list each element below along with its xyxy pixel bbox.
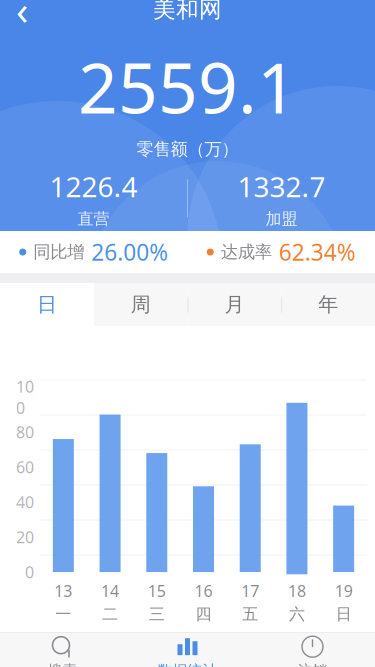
button[interactable]: 搜索	[0, 633, 125, 667]
staticText: 四	[195, 604, 211, 624]
staticText: 年	[318, 292, 338, 317]
staticText: 月	[224, 292, 244, 317]
button[interactable]: 月	[187, 283, 281, 326]
staticText: 14	[101, 580, 119, 601]
staticText: 1332.7	[237, 168, 325, 205]
staticText: 五	[242, 604, 258, 624]
staticText: 19	[335, 580, 353, 601]
staticText: 1226.4	[49, 168, 137, 205]
staticText: 零售额（万）	[136, 138, 238, 160]
staticText: 60	[16, 456, 34, 478]
staticText: 18	[288, 580, 306, 601]
staticText: 20	[16, 526, 34, 548]
button[interactable]: 数据统计	[125, 633, 250, 667]
staticText: 100	[16, 376, 34, 418]
button[interactable]: 日	[0, 283, 94, 326]
staticText: 62.34%	[279, 237, 356, 267]
staticText: 二	[102, 604, 118, 624]
staticText: 美和网	[153, 0, 222, 23]
staticText: 0	[25, 561, 34, 583]
staticText: 80	[16, 421, 34, 443]
button[interactable]: 周	[94, 283, 188, 326]
staticText: 三	[149, 604, 165, 624]
staticText: 直营	[77, 209, 109, 229]
staticText: 周	[131, 292, 151, 317]
staticText: 40	[16, 491, 34, 513]
staticText: 15	[148, 580, 166, 601]
staticText: 注销	[297, 662, 327, 667]
staticText: 加盟	[265, 209, 297, 229]
staticText: ‹	[16, 0, 28, 36]
staticText: 日	[37, 292, 57, 317]
staticText: 六	[289, 604, 305, 624]
button[interactable]: 注销	[250, 633, 375, 667]
staticText: 达成率	[221, 241, 272, 263]
staticText: 16	[194, 580, 212, 601]
staticText: 数据统计	[157, 662, 217, 667]
staticText: 日	[336, 604, 352, 624]
staticText: 2559.1	[78, 40, 297, 133]
staticText: 一	[55, 604, 71, 624]
staticText: 13	[54, 580, 72, 601]
staticText: 26.00%	[91, 237, 168, 267]
button[interactable]: 年	[281, 283, 375, 326]
staticText: 搜索	[47, 662, 77, 667]
staticText: 17	[241, 580, 259, 601]
button[interactable]: Back	[0, 0, 44, 29]
staticText: 同比增	[33, 241, 84, 263]
